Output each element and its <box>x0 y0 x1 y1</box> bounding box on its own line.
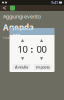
button[interactable]: Increase <box>18 38 26 42</box>
button[interactable]: Annulla <box>12 64 30 70</box>
staticText: lunedì 14 ottobre <box>3 35 31 40</box>
staticText: 00 <box>36 43 46 55</box>
button[interactable]: Imposta <box>33 64 51 70</box>
staticText: 9:41 <box>51 0 58 5</box>
staticText: ▼ <box>40 56 43 61</box>
button[interactable]: Back <box>2 5 7 11</box>
staticText: ▲ <box>40 38 43 42</box>
staticText: < <box>2 4 6 12</box>
staticText: Imposta ora <box>12 24 33 39</box>
button[interactable]: Decrease <box>37 56 45 60</box>
staticText: Aggiungi evento <box>3 13 41 20</box>
staticText: Agenda <box>3 22 34 33</box>
staticText: ▼ <box>21 56 24 61</box>
staticText: Annulla <box>15 64 28 70</box>
button[interactable]: Decrease <box>18 56 26 60</box>
staticText: ▲ <box>21 38 24 42</box>
staticText: Imposta <box>35 64 49 70</box>
staticText: 10 <box>17 43 27 55</box>
staticText: : <box>30 43 33 55</box>
button[interactable]: Increase <box>37 38 45 42</box>
